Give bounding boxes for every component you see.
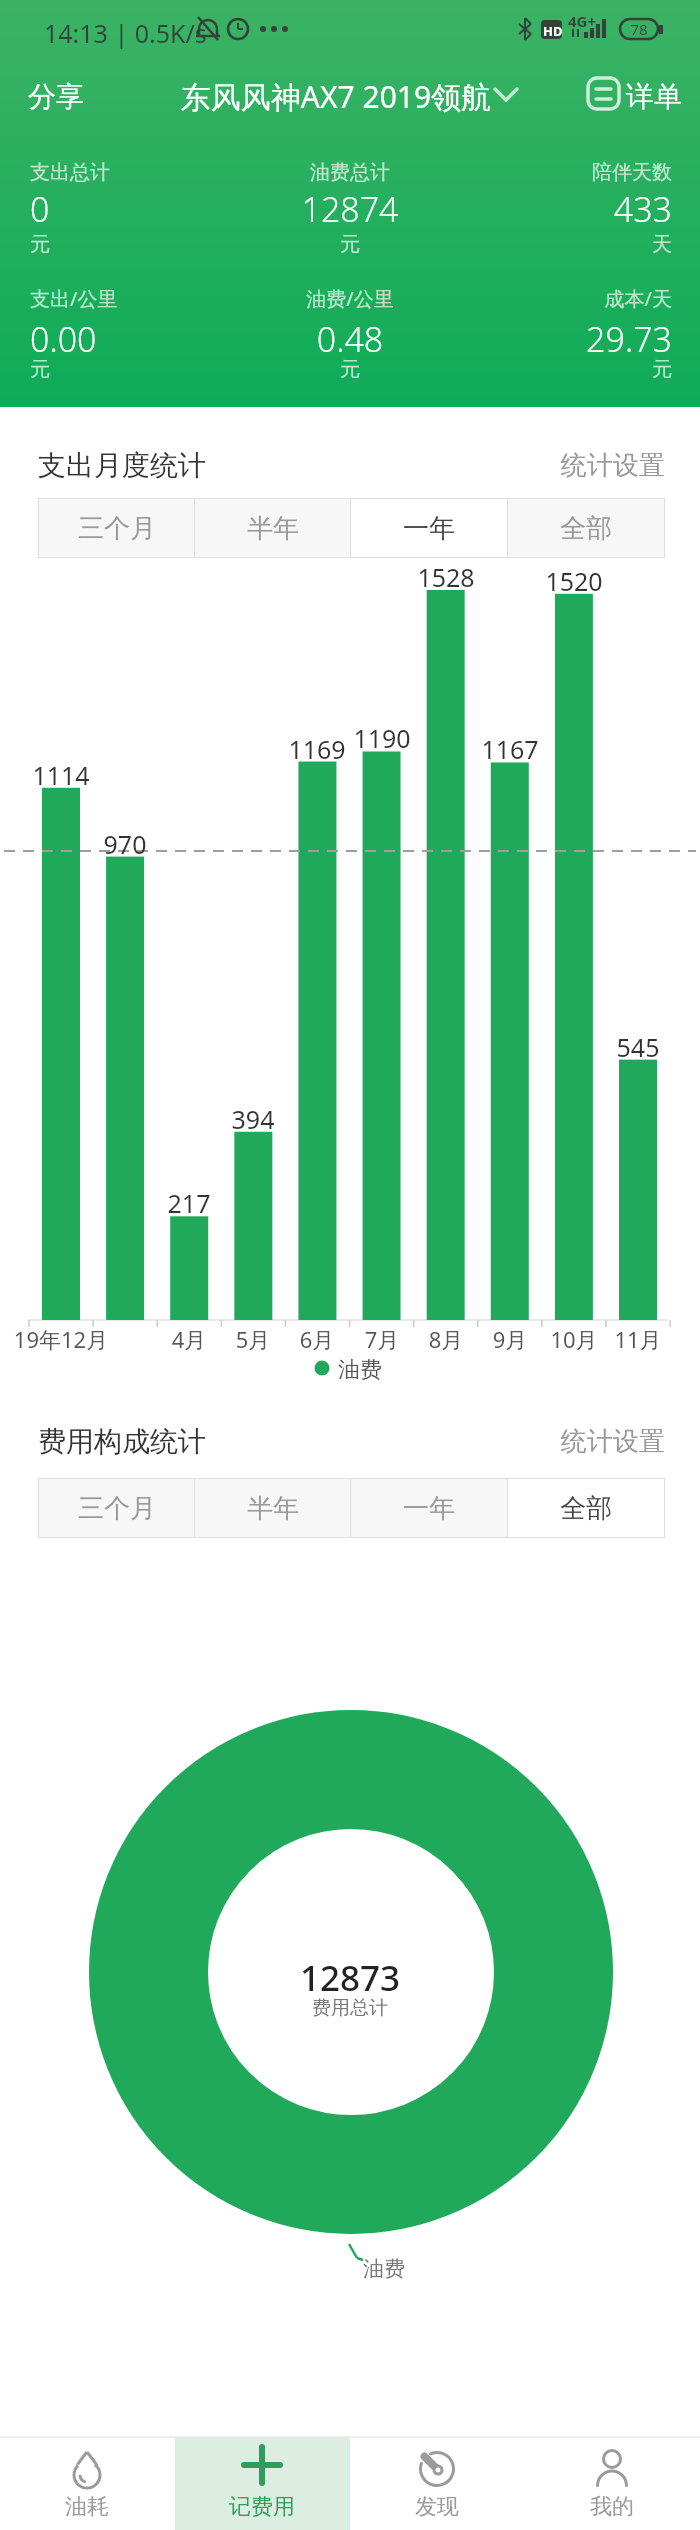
staticText: 东风风神AX7 2019领航 <box>0 76 672 117</box>
button[interactable]: 全部 <box>508 1479 664 1537</box>
staticText: 油费 <box>338 1356 382 1384</box>
staticText: 分享 <box>28 79 84 114</box>
staticText: 4月 <box>129 1324 249 1354</box>
staticText: 支出月度统计 <box>38 448 206 483</box>
staticText: 9月 <box>450 1324 570 1354</box>
staticText: 一年 <box>403 512 455 545</box>
staticText: 费用总计 <box>0 1996 700 2020</box>
button[interactable]: 详单 <box>626 79 682 114</box>
staticText: 0.48 <box>0 316 700 362</box>
staticText: 油费总计 <box>0 160 700 185</box>
staticText: 统计设置 <box>465 449 665 482</box>
staticText: 78 <box>624 19 654 39</box>
button[interactable] <box>0 2437 175 2530</box>
staticText: 我的 <box>552 2493 672 2521</box>
staticText: 8月 <box>386 1324 506 1354</box>
staticText: 10月 <box>514 1324 634 1354</box>
staticText: 费用构成统计 <box>38 1424 206 1459</box>
button[interactable]: 东风风神AX7 2019领航 <box>0 76 672 117</box>
button[interactable]: 全部 <box>508 499 664 557</box>
staticText: HD <box>543 22 563 40</box>
button[interactable]: 统计设置 <box>465 1425 665 1458</box>
staticText: 三个月 <box>78 512 156 545</box>
staticText: 1520 <box>514 564 634 598</box>
staticText: 一年 <box>403 1492 455 1525</box>
staticText: 217 <box>129 1186 249 1220</box>
staticText: 元 <box>30 357 50 382</box>
staticText: 0.00 <box>30 316 97 362</box>
staticText: 元 <box>30 232 50 257</box>
staticText: 油耗 <box>27 2493 147 2521</box>
staticText: 半年 <box>247 1492 299 1525</box>
staticText: 详单 <box>626 79 682 114</box>
staticText: 11月 <box>578 1324 698 1354</box>
button[interactable]: 一年 <box>351 1479 507 1537</box>
staticText: 发现 <box>377 2493 497 2521</box>
staticText: 油费 <box>363 2256 405 2282</box>
staticText: 支出/公里 <box>30 285 118 312</box>
staticText: 5月 <box>193 1324 313 1354</box>
button[interactable] <box>175 2437 350 2530</box>
staticText: 全部 <box>560 1492 612 1525</box>
staticText: 0 <box>30 186 50 232</box>
staticText: 1169 <box>257 732 377 766</box>
staticText: 6月 <box>257 1324 377 1354</box>
button[interactable] <box>350 2437 525 2530</box>
staticText: 三个月 <box>78 1492 156 1525</box>
staticText: 统计设置 <box>465 1425 665 1458</box>
staticText: 支出总计 <box>30 160 110 185</box>
staticText: 1528 <box>386 560 506 594</box>
staticText: 陪伴天数 <box>372 160 672 185</box>
staticText: 12873 <box>0 1954 700 2002</box>
staticText: 29.73 <box>372 316 672 362</box>
staticText: 14:13 | 0.5K/s <box>44 16 207 50</box>
staticText: 394 <box>193 1102 313 1136</box>
button[interactable]: 半年 <box>195 499 350 557</box>
button[interactable]: 三个月 <box>39 1479 194 1537</box>
staticText: 19年12月 <box>1 1324 121 1354</box>
staticText: 7月 <box>322 1324 442 1354</box>
staticText: 12874 <box>0 186 700 232</box>
staticText: 970 <box>65 827 185 861</box>
staticText: 元 <box>372 357 672 382</box>
staticText: 天 <box>372 232 672 257</box>
staticText: 成本/天 <box>372 285 672 312</box>
staticText: 油费/公里 <box>0 285 700 312</box>
staticText: 元 <box>0 357 700 382</box>
button[interactable] <box>525 2437 700 2530</box>
button[interactable]: 三个月 <box>39 499 194 557</box>
button[interactable]: 分享 <box>28 79 84 114</box>
staticText: 1190 <box>322 721 442 755</box>
staticText: 全部 <box>560 512 612 545</box>
staticText: 433 <box>372 186 672 232</box>
button[interactable]: 一年 <box>351 499 507 557</box>
staticText: 545 <box>578 1030 698 1064</box>
button[interactable]: 统计设置 <box>465 449 665 482</box>
staticText: 记费用 <box>202 2493 322 2521</box>
staticText: 4G+ <box>568 11 597 31</box>
button[interactable]: 半年 <box>195 1479 350 1537</box>
staticText: 元 <box>0 232 700 257</box>
staticText: 1167 <box>450 732 570 766</box>
staticText: 半年 <box>247 512 299 545</box>
staticText: 1114 <box>1 758 121 792</box>
